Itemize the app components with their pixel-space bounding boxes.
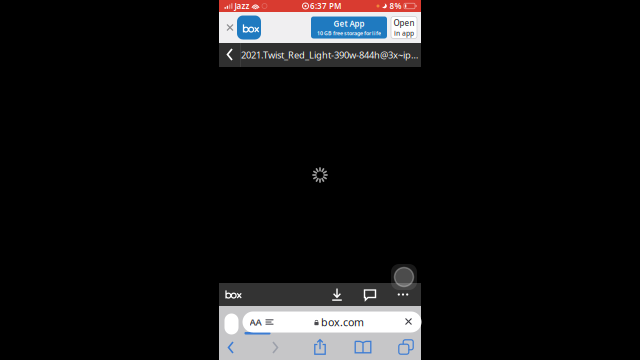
button[interactable]: Tabs [395, 336, 417, 358]
staticText: 6:37 PM [310, 1, 341, 11]
button[interactable]: Open [391, 16, 417, 38]
staticText: in app [394, 29, 414, 37]
staticText: Jazz [234, 1, 249, 11]
button[interactable]: Comments [362, 286, 378, 302]
button[interactable]: AA [242, 311, 421, 332]
button[interactable]: Back [223, 336, 245, 358]
staticText: 2021.Twist_Red_Light-390w-844h@3x~ip... [241, 49, 418, 61]
button[interactable]: Bookmarks [352, 336, 374, 358]
button[interactable]: Get App [311, 16, 387, 38]
button[interactable]: Dismiss banner [223, 14, 237, 40]
staticText: AA [249, 316, 261, 328]
button[interactable]: Forward [266, 336, 288, 358]
staticText: Get App [333, 18, 364, 29]
staticText: 10 GB free storage for life [317, 29, 381, 37]
button[interactable]: AssistiveTouch [390, 263, 418, 291]
button[interactable]: Share [309, 336, 331, 358]
staticText: Open [393, 17, 414, 28]
button[interactable]: Back [222, 43, 240, 67]
button[interactable]: Download [329, 286, 345, 302]
staticText: 8% [389, 1, 401, 11]
button[interactable]: More [395, 286, 411, 302]
staticText: box.com [321, 315, 364, 329]
